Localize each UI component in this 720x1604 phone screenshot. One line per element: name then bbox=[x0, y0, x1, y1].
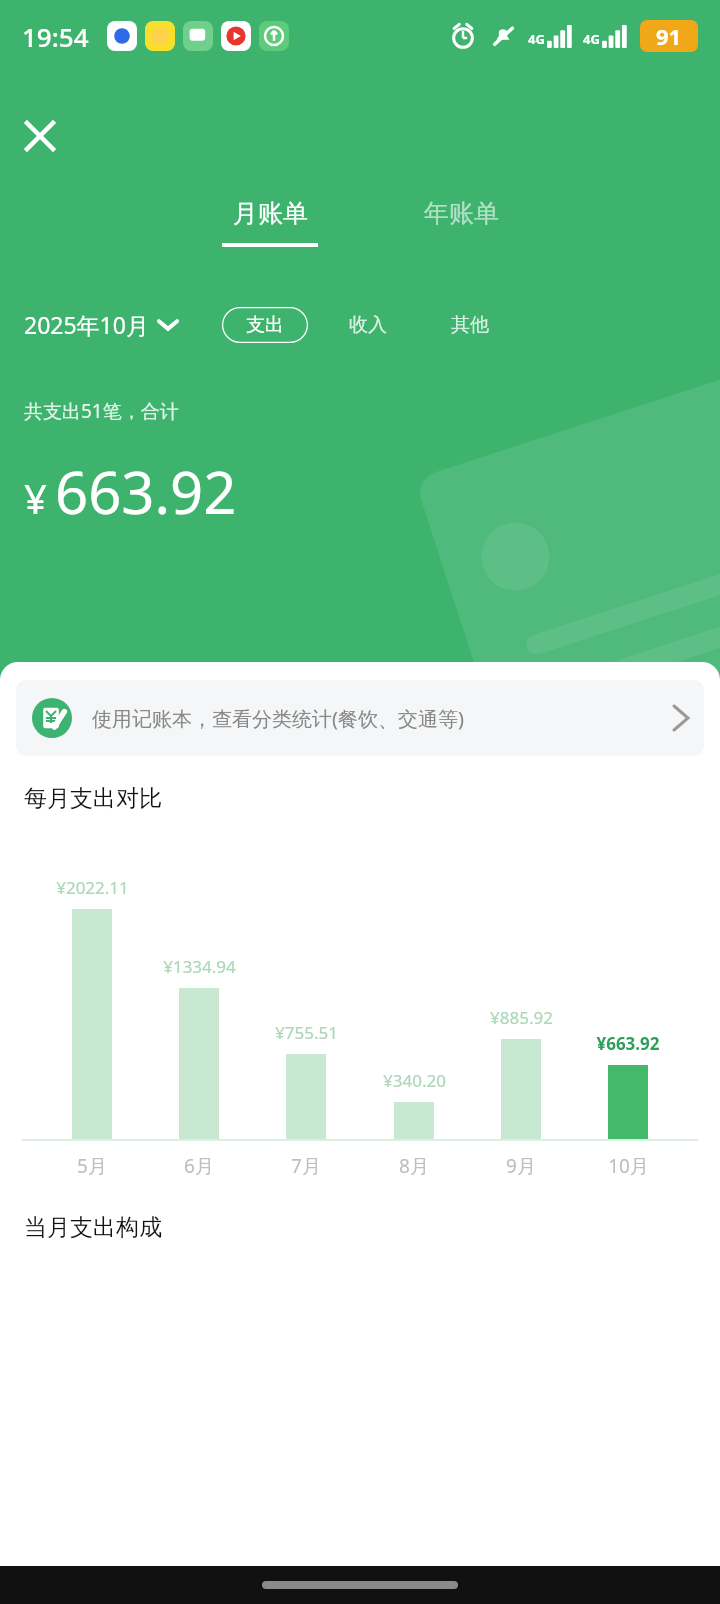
staticText: 91 bbox=[656, 21, 682, 51]
button[interactable]: ¥1334.94 bbox=[153, 857, 245, 1141]
button[interactable]: ¥663.92 bbox=[582, 857, 674, 1141]
button[interactable]: 其他 bbox=[445, 305, 495, 345]
button[interactable]: ¥340.20 bbox=[368, 857, 460, 1141]
button[interactable]: 月账单 bbox=[214, 194, 326, 251]
button[interactable]: ¥755.51 bbox=[260, 857, 352, 1141]
staticText: 其他 bbox=[451, 313, 489, 337]
staticText: ¥885.92 bbox=[490, 1006, 553, 1029]
staticText: 19:54 bbox=[22, 19, 89, 54]
button[interactable]: 支出 bbox=[221, 306, 309, 344]
staticText: 10月 bbox=[608, 1153, 649, 1177]
button[interactable]: ¥885.92 bbox=[475, 857, 567, 1141]
staticText: 9月 bbox=[506, 1153, 536, 1177]
button[interactable]: ¥2022.11 bbox=[46, 857, 138, 1141]
button[interactable]: 年账单 bbox=[416, 194, 507, 251]
staticText: 共支出51笔，合计 bbox=[24, 398, 179, 424]
staticText: 4G bbox=[583, 30, 600, 48]
button[interactable]: 收入 bbox=[343, 305, 393, 345]
staticText: 月账单 bbox=[233, 198, 308, 229]
staticText: 收入 bbox=[349, 313, 387, 337]
staticText: 当月支出构成 bbox=[24, 1213, 162, 1242]
staticText: 6月 bbox=[184, 1153, 214, 1177]
staticText: ¥1334.94 bbox=[163, 955, 236, 978]
button[interactable]: 2025年10月 bbox=[24, 303, 177, 346]
button[interactable]: Close bbox=[12, 108, 68, 164]
staticText: 支出 bbox=[246, 313, 284, 337]
staticText: ¥ bbox=[24, 471, 47, 525]
staticText: 5月 bbox=[77, 1153, 107, 1177]
staticText: ¥663.92 bbox=[596, 1032, 660, 1055]
staticText: 7月 bbox=[291, 1153, 321, 1177]
staticText: 663.92 bbox=[55, 452, 237, 531]
staticText: 4G bbox=[528, 30, 545, 48]
staticText: 每月支出对比 bbox=[24, 784, 162, 813]
staticText: 年账单 bbox=[424, 198, 499, 229]
staticText: ¥2022.11 bbox=[56, 876, 129, 899]
button[interactable]: 使用记账本，查看分类统计(餐饮、交通等) bbox=[16, 680, 704, 756]
staticText: 使用记账本，查看分类统计(餐饮、交通等) bbox=[92, 705, 666, 732]
staticText: ¥340.20 bbox=[383, 1069, 446, 1092]
staticText: ¥755.51 bbox=[275, 1021, 338, 1044]
staticText: 8月 bbox=[399, 1153, 429, 1177]
staticText: 2025年10月 bbox=[24, 309, 149, 340]
